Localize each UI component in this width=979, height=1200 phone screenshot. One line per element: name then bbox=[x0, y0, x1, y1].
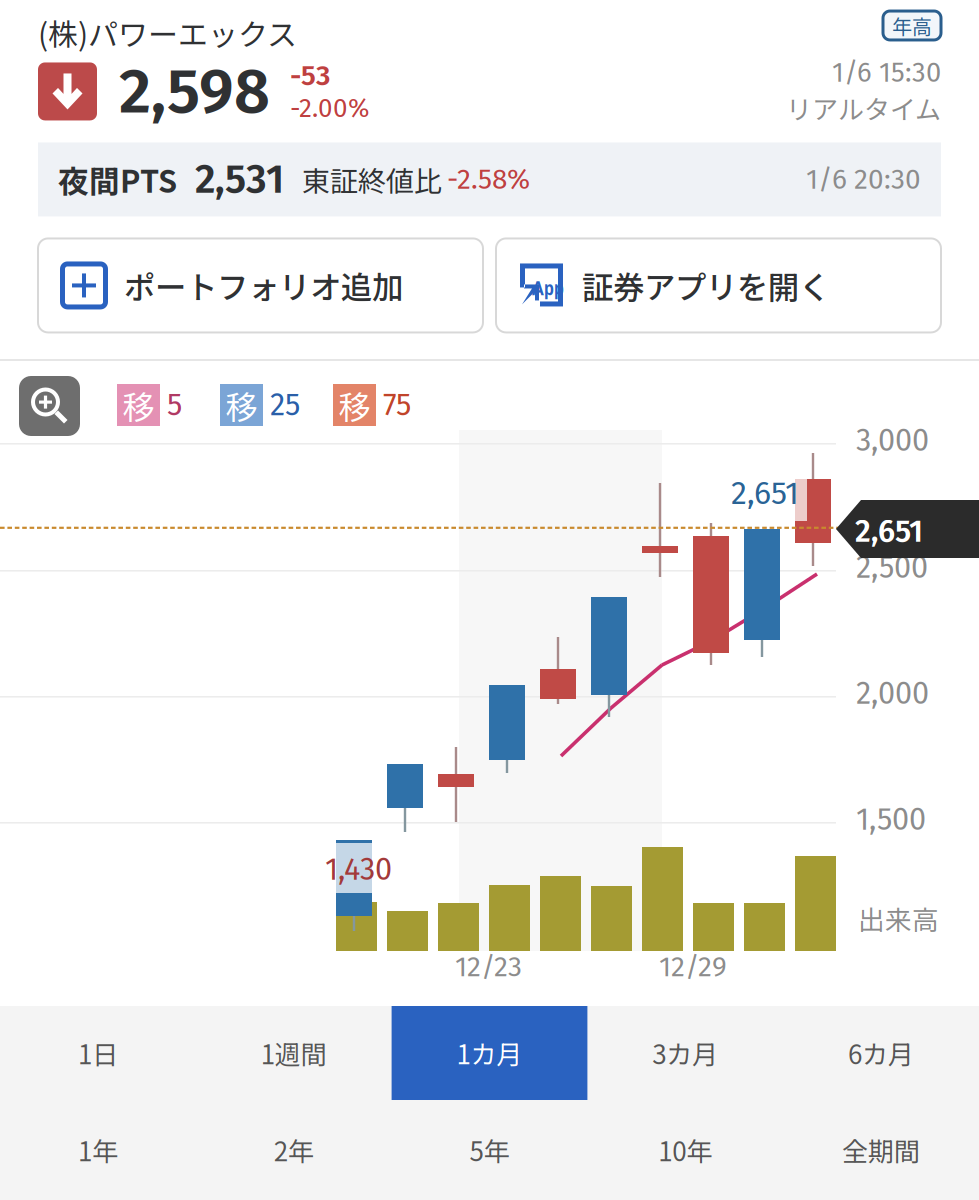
staticText: 2,651 bbox=[731, 474, 799, 512]
staticText: 1,430 bbox=[325, 851, 392, 888]
staticText: 証券アプリを開く bbox=[582, 263, 830, 308]
button[interactable]: 3カ月 bbox=[587, 1006, 783, 1100]
staticText: リアルタイム bbox=[786, 89, 941, 127]
staticText: 2,500 bbox=[856, 549, 928, 586]
button[interactable]: ポートフォリオ追加 bbox=[38, 238, 483, 332]
staticText: 2,531 bbox=[195, 155, 284, 203]
staticText: 移 bbox=[122, 382, 154, 428]
staticText: 1/6 20:30 bbox=[806, 163, 921, 196]
button[interactable]: 全期間 bbox=[783, 1100, 979, 1200]
staticText: 東証終値比 bbox=[302, 159, 442, 200]
button[interactable]: 1日 bbox=[0, 1006, 196, 1100]
button[interactable]: Zoom in bbox=[19, 376, 80, 436]
staticText: 10年 bbox=[658, 1131, 712, 1169]
staticText: 6カ月 bbox=[848, 1034, 914, 1072]
staticText: App bbox=[532, 274, 564, 301]
staticText: 75 bbox=[383, 387, 411, 423]
button[interactable]: 移 bbox=[117, 384, 182, 426]
staticText: 12/23 bbox=[455, 950, 522, 984]
staticText: 1日 bbox=[78, 1034, 118, 1072]
staticText: 1カ月 bbox=[456, 1034, 522, 1072]
staticText: 夜間PTS bbox=[58, 157, 177, 202]
staticText: ポートフォリオ追加 bbox=[124, 263, 403, 308]
staticText: (株)パワーエックス bbox=[38, 11, 297, 54]
button[interactable]: 年高 bbox=[883, 11, 941, 40]
staticText: 1週間 bbox=[261, 1034, 327, 1072]
staticText: 2,598 bbox=[119, 54, 270, 129]
staticText: 1年 bbox=[78, 1131, 118, 1169]
button[interactable]: 1週間 bbox=[196, 1006, 392, 1100]
staticText: 3カ月 bbox=[652, 1034, 718, 1072]
staticText: 5年 bbox=[469, 1131, 509, 1169]
staticText: 2,000 bbox=[856, 675, 929, 712]
button[interactable]: App bbox=[496, 238, 941, 332]
staticText: -53 bbox=[290, 59, 330, 93]
staticText: 5 bbox=[167, 387, 182, 423]
button[interactable]: 2年 bbox=[196, 1100, 392, 1200]
button[interactable]: 移 bbox=[220, 384, 300, 426]
button[interactable]: 1カ月 bbox=[392, 1006, 587, 1100]
button[interactable]: 5年 bbox=[392, 1100, 587, 1200]
button[interactable]: 移 bbox=[333, 384, 411, 426]
staticText: 1/6 15:30 bbox=[832, 56, 941, 89]
staticText: 全期間 bbox=[842, 1131, 920, 1169]
staticText: 12/29 bbox=[659, 950, 727, 984]
button[interactable]: 1年 bbox=[0, 1100, 196, 1200]
staticText: 年高 bbox=[892, 11, 932, 40]
staticText: -2.58% bbox=[447, 163, 530, 196]
staticText: 移 bbox=[225, 382, 257, 428]
staticText: 出来高 bbox=[858, 899, 939, 938]
button[interactable]: 10年 bbox=[587, 1100, 783, 1200]
staticText: 25 bbox=[270, 387, 300, 423]
staticText: 1,500 bbox=[856, 801, 926, 838]
staticText: 2,651 bbox=[855, 513, 923, 550]
staticText: 2年 bbox=[274, 1131, 314, 1169]
staticText: 移 bbox=[338, 382, 370, 428]
staticText: 3,000 bbox=[856, 422, 929, 459]
button[interactable]: 6カ月 bbox=[783, 1006, 979, 1100]
staticText: -2.00% bbox=[290, 93, 369, 124]
